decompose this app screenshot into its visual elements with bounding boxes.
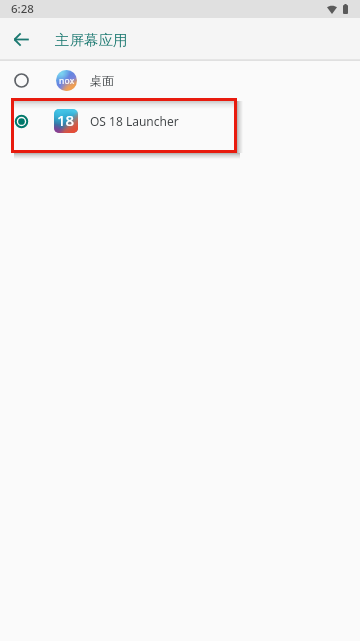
staticText: 主屏幕应用 — [55, 31, 128, 49]
staticText: 18 — [57, 110, 75, 130]
button[interactable]: 18 — [0, 100, 360, 142]
button[interactable]: Back — [0, 19, 42, 61]
staticText: OS 18 Launcher — [90, 113, 179, 129]
button[interactable]: nox — [0, 59, 360, 101]
staticText: 6:28 — [11, 1, 34, 17]
staticText: nox — [59, 75, 75, 87]
staticText: 桌面 — [90, 73, 114, 88]
